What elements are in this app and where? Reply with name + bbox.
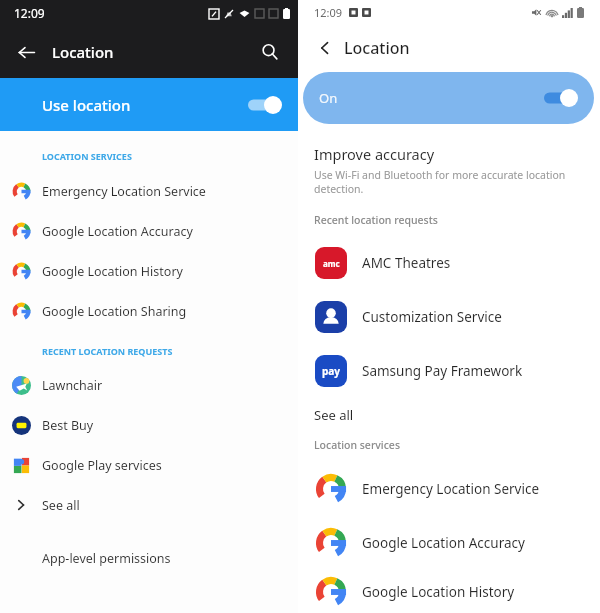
staticText: Use Wi-Fi and Bluetooth for more accurat…: [314, 168, 566, 182]
button[interactable]: Emergency Location Service: [0, 171, 298, 211]
staticText: Samsung Pay Framework: [362, 362, 523, 380]
staticText: Location: [344, 37, 410, 59]
staticText: Use location: [42, 95, 131, 115]
button[interactable]: Use location: [0, 78, 298, 131]
staticText: Google Location History: [42, 263, 183, 280]
staticText: Google Location Sharing: [42, 303, 187, 320]
staticText: LOCATION SERVICES: [42, 150, 132, 162]
staticText: 12:09: [314, 5, 343, 20]
button[interactable]: See all: [0, 485, 298, 525]
button[interactable]: On: [303, 72, 594, 124]
staticText: pay: [322, 364, 341, 378]
staticText: Customization Service: [362, 308, 502, 326]
staticText: Best Buy: [42, 417, 94, 434]
staticText: See all: [314, 406, 354, 424]
button[interactable]: Best Buy: [0, 405, 298, 445]
staticText: detection.: [314, 182, 364, 196]
button[interactable]: Back: [308, 31, 342, 65]
staticText: AMC Theatres: [362, 254, 451, 272]
button[interactable]: Back: [6, 32, 46, 72]
staticText: App-level permissions: [42, 550, 171, 567]
staticText: amc: [323, 258, 340, 269]
button[interactable]: Google Location History: [300, 570, 600, 613]
button[interactable]: Google Location Sharing: [0, 291, 298, 331]
staticText: Recent location requests: [314, 213, 438, 227]
button[interactable]: See all: [300, 398, 600, 432]
staticText: RECENT LOCATION REQUESTS: [42, 345, 173, 357]
staticText: Emergency Location Service: [42, 183, 206, 200]
button[interactable]: pay: [300, 344, 600, 398]
button[interactable]: Search: [250, 32, 290, 72]
staticText: See all: [42, 497, 80, 514]
staticText: Emergency Location Service: [362, 480, 540, 498]
button[interactable]: amc: [300, 236, 600, 290]
staticText: Google Location History: [362, 583, 515, 601]
button[interactable]: Emergency Location Service: [300, 462, 600, 516]
staticText: On: [319, 89, 338, 107]
staticText: Location: [52, 42, 114, 62]
button[interactable]: Lawnchair: [0, 365, 298, 405]
staticText: Improve accuracy: [314, 144, 435, 164]
staticText: Lawnchair: [42, 377, 103, 394]
button[interactable]: Google Location Accuracy: [300, 516, 600, 570]
button[interactable]: Google Play services: [0, 445, 298, 485]
button[interactable]: Google Location Accuracy: [0, 211, 298, 251]
staticText: Location services: [314, 438, 400, 452]
staticText: Google Location Accuracy: [362, 534, 525, 552]
staticText: 12:09: [14, 5, 45, 21]
button[interactable]: Customization Service: [300, 290, 600, 344]
button[interactable]: App-level permissions: [0, 539, 298, 577]
staticText: Google Location Accuracy: [42, 223, 193, 240]
staticText: Google Play services: [42, 457, 162, 474]
button[interactable]: Google Location History: [0, 251, 298, 291]
